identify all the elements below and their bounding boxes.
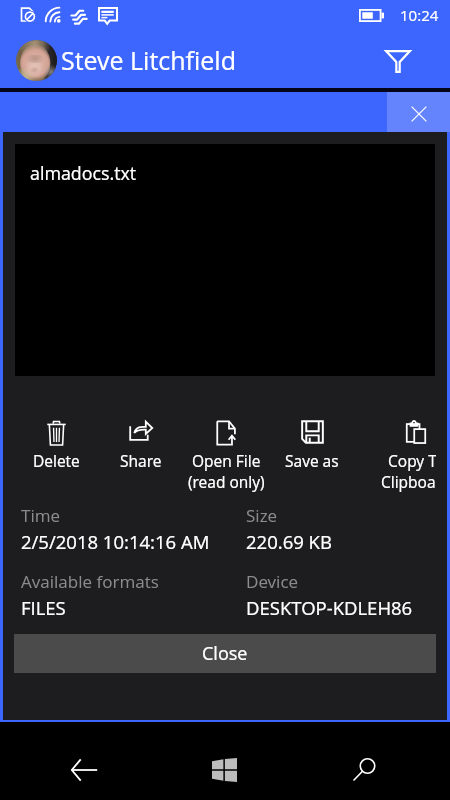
staticText: Save as bbox=[285, 450, 339, 471]
staticText: FILES bbox=[21, 595, 66, 620]
staticText: Close bbox=[202, 641, 248, 666]
button[interactable]: Search bbox=[342, 747, 387, 792]
staticText: Time bbox=[21, 504, 61, 527]
staticText: Delete bbox=[33, 450, 80, 471]
staticText: Share bbox=[120, 450, 162, 471]
staticText: Device bbox=[246, 570, 299, 593]
button[interactable]: Save as bbox=[258, 414, 366, 492]
staticText: Clipboard bbox=[381, 471, 436, 492]
staticText: almadocs.txt bbox=[30, 161, 137, 185]
button[interactable]: Copy To bbox=[362, 414, 436, 492]
button[interactable]: Close bbox=[14, 634, 436, 673]
staticText: (read only) bbox=[188, 471, 265, 492]
staticText: Open File bbox=[192, 450, 261, 471]
staticText: 10:24 bbox=[400, 5, 439, 25]
staticText: 2/5/2018 10:14:16 AM bbox=[21, 529, 210, 554]
staticText: Copy To bbox=[388, 450, 436, 471]
button[interactable]: Close bbox=[387, 92, 450, 132]
button[interactable]: Open File bbox=[172, 414, 280, 492]
button[interactable]: Start bbox=[202, 747, 247, 792]
staticText: Steve Litchfield bbox=[61, 43, 236, 77]
staticText: Size bbox=[246, 504, 278, 527]
button[interactable]: Back bbox=[62, 747, 107, 792]
button[interactable]: Filter bbox=[381, 44, 415, 78]
button[interactable]: Share bbox=[87, 414, 195, 492]
staticText: 220.69 KB bbox=[246, 529, 332, 554]
staticText: Available formats bbox=[21, 570, 159, 593]
button[interactable]: Delete bbox=[14, 414, 110, 492]
staticText: DESKTOP-KDLEH86 bbox=[246, 595, 413, 620]
